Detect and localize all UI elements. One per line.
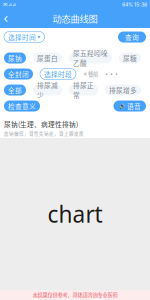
button[interactable]: 尿五羟吲哚乙酸 xyxy=(69,52,112,63)
button[interactable]: 尿糖 xyxy=(119,52,141,63)
staticText: 64% xyxy=(122,1,133,8)
staticText: • • • xyxy=(105,71,118,77)
button[interactable]: 检查意义 xyxy=(4,100,40,111)
staticText: 尿五羟吲哚乙酸 xyxy=(73,48,108,68)
button[interactable]: 全封闭 xyxy=(4,68,33,79)
button[interactable]: 尿蛋白 xyxy=(33,52,62,63)
button[interactable]: 选择时段 xyxy=(40,68,76,79)
staticText: 尿钠(生理、病理性排钠) xyxy=(4,119,78,129)
button[interactable]: 尿钠 xyxy=(4,52,26,63)
staticText: 尿钠 xyxy=(8,53,22,63)
button[interactable]: 排尿减少 xyxy=(33,84,62,95)
staticText: 排尿正常 xyxy=(73,80,94,100)
staticText: 血钠偏低，肾性失钠症，肾上腺皮质 xyxy=(4,130,84,137)
staticText: 检查意义 xyxy=(8,101,36,111)
button[interactable]: 选择时间 xyxy=(4,31,44,42)
staticText: 排尿减少 xyxy=(37,80,58,100)
staticText: 动态曲线图 xyxy=(52,12,97,25)
staticText: chart xyxy=(47,199,102,229)
button[interactable]: 全部 xyxy=(4,84,26,95)
button[interactable]: 查询 xyxy=(118,31,146,42)
staticText: 选择时间 xyxy=(8,32,36,42)
staticText: ‹ xyxy=(3,11,8,26)
button[interactable]: 🔊 xyxy=(113,100,146,111)
staticText: 查询 xyxy=(125,32,139,42)
staticText: 全部 xyxy=(8,85,22,95)
staticText: 尿蛋白 xyxy=(37,53,58,63)
staticText: ✉ xyxy=(3,1,7,8)
staticText: 全封闭 xyxy=(8,69,29,79)
staticText: 选择时段 xyxy=(44,69,72,79)
staticText: 排尿增多 xyxy=(109,85,137,95)
staticText: 15:36 xyxy=(134,1,147,8)
staticText: ✕ 餐前 xyxy=(83,70,98,78)
staticText: 本结果仅供参考，具体请咨询专业医师 xyxy=(32,291,117,299)
staticText: ⊿⊿ xyxy=(8,2,16,7)
button[interactable]: 排尿增多 xyxy=(105,84,141,95)
staticText: 🔊 xyxy=(118,103,125,109)
staticText: ▾ xyxy=(37,34,40,40)
button[interactable]: 排尿正常 xyxy=(69,84,98,95)
staticText: 语音 xyxy=(127,101,141,111)
button[interactable]: 返回 xyxy=(0,10,12,26)
staticText: 尿糖 xyxy=(123,53,137,63)
